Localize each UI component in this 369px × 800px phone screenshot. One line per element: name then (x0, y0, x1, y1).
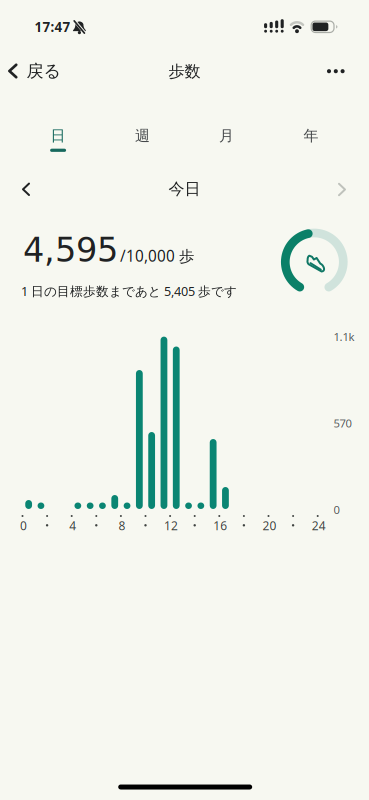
staticText: 1.1k (333, 329, 354, 344)
staticText: 16 (213, 517, 227, 534)
staticText: 4,595 (23, 230, 118, 269)
button[interactable]: 前の日 (4, 167, 48, 211)
button[interactable]: 週 (100, 110, 184, 162)
button[interactable]: 月 (184, 110, 269, 162)
button[interactable]: 日 (16, 107, 100, 159)
staticText: 月 (219, 126, 234, 145)
staticText: 17:47 (34, 18, 70, 36)
staticText: 戻る (27, 60, 61, 82)
staticText: /10,000 歩 (120, 245, 194, 266)
staticText: 今日 (168, 179, 200, 199)
button[interactable]: 年 (269, 110, 353, 162)
staticText: 1 日の目標歩数まであと 5,405 歩です (21, 282, 237, 300)
staticText: 日 (51, 126, 66, 145)
staticText: 8 (118, 517, 125, 534)
staticText: 歩数 (168, 61, 200, 82)
staticText: 0 (20, 517, 27, 534)
staticText: 週 (135, 126, 150, 145)
staticText: 4 (69, 517, 76, 534)
staticText: 20 (262, 517, 276, 534)
staticText: 0 (333, 502, 339, 517)
button[interactable]: 戻る (0, 49, 80, 93)
staticText: 570 (333, 415, 351, 431)
button[interactable]: その他のオプション (314, 49, 358, 93)
staticText: 年 (303, 126, 318, 145)
button[interactable]: 次の日 (320, 167, 364, 211)
staticText: 12 (164, 517, 178, 534)
staticText: 24 (312, 517, 326, 534)
